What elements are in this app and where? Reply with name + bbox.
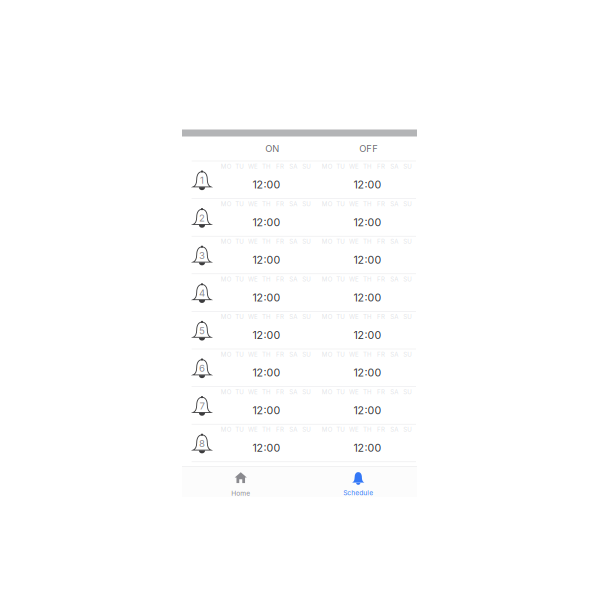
staticText: TU — [235, 388, 244, 396]
button[interactable]: 1 — [182, 161, 417, 198]
staticText: FR — [276, 313, 284, 320]
staticText: FR — [276, 163, 284, 170]
staticText: FR — [377, 313, 385, 320]
staticText: TU — [235, 275, 244, 283]
staticText: ON — [265, 143, 279, 154]
staticText: TU — [235, 426, 244, 433]
staticText: SU — [302, 388, 311, 396]
button[interactable]: 3 — [182, 236, 417, 273]
staticText: MO — [221, 200, 232, 208]
staticText: TU — [336, 426, 345, 433]
button[interactable]: Home — [182, 467, 299, 497]
staticText: Home — [231, 489, 250, 497]
staticText: TH — [363, 238, 372, 245]
button[interactable]: 6 — [182, 349, 417, 386]
staticText: SU — [302, 163, 311, 170]
staticText: TH — [363, 200, 372, 208]
staticText: 12:00 — [252, 404, 280, 417]
staticText: OFF — [359, 143, 378, 154]
staticText: SU — [302, 275, 311, 283]
button[interactable]: 4 — [182, 273, 417, 311]
staticText: MO — [322, 238, 333, 245]
staticText: 12:00 — [353, 366, 381, 379]
staticText: MO — [322, 163, 333, 170]
staticText: MO — [221, 426, 232, 433]
staticText: TU — [336, 238, 345, 245]
staticText: MO — [322, 313, 333, 320]
staticText: WE — [248, 426, 258, 433]
staticText: SU — [403, 426, 412, 433]
staticText: SA — [390, 388, 398, 396]
staticText: TH — [363, 163, 372, 170]
button[interactable]: 7 — [182, 386, 417, 424]
staticText: 3 — [199, 250, 205, 261]
button[interactable]: 5 — [182, 311, 417, 349]
staticText: TH — [262, 275, 271, 283]
staticText: 6 — [199, 362, 205, 374]
staticText: 12:00 — [353, 253, 381, 266]
staticText: FR — [377, 351, 385, 358]
staticText: MO — [221, 275, 232, 283]
staticText: WE — [349, 238, 359, 245]
staticText: WE — [349, 426, 359, 433]
button[interactable]: 2 — [182, 198, 417, 236]
staticText: TU — [336, 275, 345, 283]
staticText: 12:00 — [353, 329, 381, 341]
staticText: 12:00 — [353, 441, 381, 454]
button[interactable]: 8 — [182, 424, 417, 461]
staticText: TU — [336, 200, 345, 208]
staticText: TH — [262, 238, 271, 245]
staticText: TH — [363, 275, 372, 283]
staticText: SU — [302, 351, 311, 358]
staticText: TH — [363, 388, 372, 396]
staticText: SA — [289, 388, 297, 396]
staticText: 12:00 — [353, 216, 381, 229]
staticText: 12:00 — [252, 441, 280, 454]
staticText: SA — [289, 426, 297, 433]
staticText: WE — [349, 163, 359, 170]
staticText: WE — [349, 351, 359, 358]
staticText: FR — [377, 275, 385, 283]
staticText: 12:00 — [252, 178, 280, 191]
staticText: TH — [262, 200, 271, 208]
staticText: SU — [403, 200, 412, 208]
staticText: WE — [248, 238, 258, 245]
staticText: TH — [262, 426, 271, 433]
staticText: TH — [262, 388, 271, 396]
staticText: FR — [276, 351, 284, 358]
staticText: SA — [390, 351, 398, 358]
staticText: TU — [336, 163, 345, 170]
staticText: TU — [235, 238, 244, 245]
staticText: 12:00 — [252, 366, 280, 379]
staticText: WE — [349, 200, 359, 208]
staticText: 1 — [200, 174, 204, 186]
staticText: FR — [276, 426, 284, 433]
staticText: SA — [289, 238, 297, 245]
staticText: 12:00 — [252, 253, 280, 266]
staticText: WE — [248, 388, 258, 396]
staticText: FR — [377, 388, 385, 396]
staticText: TU — [235, 351, 244, 358]
staticText: Schedule — [343, 489, 373, 497]
staticText: WE — [349, 275, 359, 283]
staticText: MO — [322, 351, 333, 358]
staticText: SU — [403, 351, 412, 358]
staticText: 12:00 — [252, 291, 280, 304]
staticText: SA — [390, 163, 398, 170]
staticText: SU — [403, 313, 412, 320]
staticText: MO — [322, 275, 333, 283]
staticText: 12:00 — [252, 329, 280, 341]
staticText: FR — [377, 238, 385, 245]
staticText: TH — [262, 351, 271, 358]
staticText: MO — [221, 238, 232, 245]
staticText: SU — [302, 200, 311, 208]
staticText: TH — [262, 163, 271, 170]
button[interactable]: Schedule — [299, 467, 417, 497]
staticText: SA — [390, 238, 398, 245]
staticText: SA — [390, 426, 398, 433]
staticText: TU — [235, 200, 244, 208]
staticText: SU — [302, 313, 311, 320]
staticText: WE — [248, 163, 258, 170]
staticText: MO — [221, 163, 232, 170]
staticText: WE — [248, 275, 258, 283]
